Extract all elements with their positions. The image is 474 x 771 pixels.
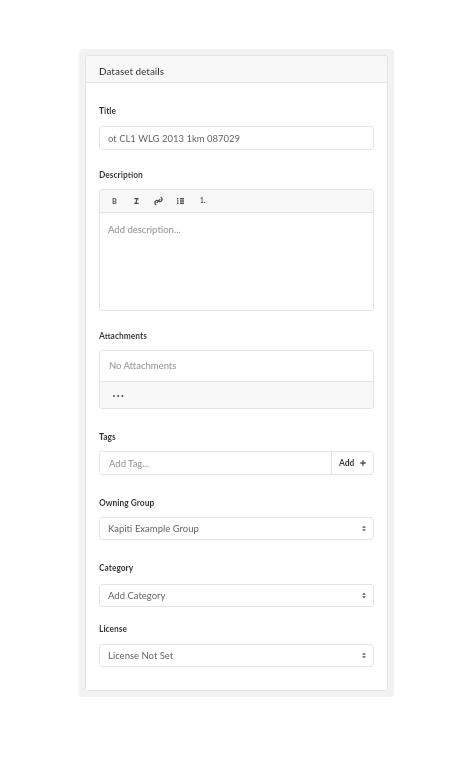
button[interactable]: Bold: [106, 191, 123, 211]
staticText: Title: [99, 106, 117, 116]
staticText: No Attachments: [109, 360, 177, 371]
button[interactable]: Insert link: [150, 191, 167, 211]
staticText: 1.: [200, 197, 206, 205]
staticText: Add Category: [108, 590, 166, 601]
button[interactable]: Add Tag...: [99, 451, 374, 475]
staticText: Add Tag...: [109, 458, 150, 469]
staticText: Category: [99, 563, 134, 573]
button[interactable]: License: [99, 644, 374, 667]
button[interactable]: Category: [99, 584, 374, 607]
staticText: Dataset details: [99, 65, 165, 77]
staticText: Kapiti Example Group: [108, 523, 199, 534]
staticText: Owning Group: [99, 498, 155, 508]
staticText: Attachments: [99, 331, 147, 341]
button[interactable]: Owning Group: [99, 517, 374, 540]
staticText: Add: [339, 458, 355, 468]
staticText: ot CL1 WLG 2013 1km 087029: [108, 133, 241, 144]
staticText: Description: [99, 170, 143, 180]
button[interactable]: Numbered list: [194, 191, 211, 211]
button[interactable]: ot CL1 WLG 2013 1km 087029: [99, 126, 374, 150]
staticText: License Not Set: [108, 650, 174, 661]
button[interactable]: More attachment options: [99, 382, 374, 409]
button[interactable]: Italic: [128, 191, 145, 211]
button[interactable]: Bulleted list: [172, 191, 189, 211]
staticText: Tags: [99, 432, 116, 442]
button[interactable]: Add: [331, 451, 374, 475]
staticText: License: [99, 624, 128, 634]
staticText: B: [112, 197, 117, 206]
staticText: Add description...: [108, 224, 181, 235]
button[interactable]: Add description...: [99, 213, 374, 311]
